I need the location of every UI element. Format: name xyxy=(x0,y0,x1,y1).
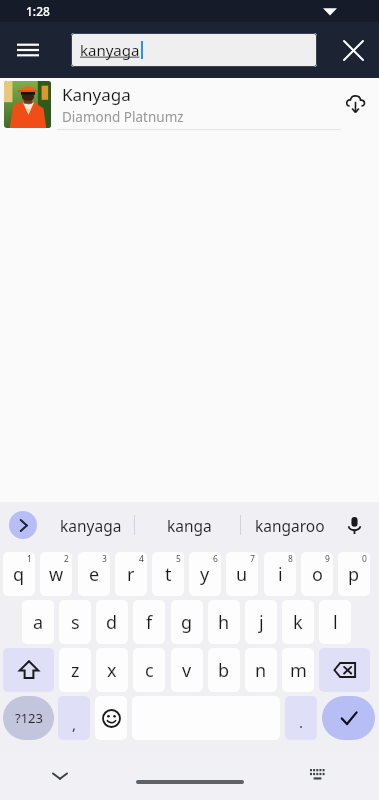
button[interactable]: Emoji xyxy=(95,696,127,740)
button[interactable]: kanga xyxy=(148,505,230,545)
button[interactable]: kanyaga xyxy=(71,33,317,67)
button[interactable]: Hide keyboard xyxy=(44,760,76,792)
button[interactable]: l xyxy=(319,600,351,644)
button[interactable]: j xyxy=(245,600,277,644)
staticText: h xyxy=(218,610,230,635)
button[interactable]: z xyxy=(59,648,91,692)
button[interactable]: kanyaga xyxy=(50,505,132,545)
staticText: t xyxy=(165,562,172,587)
staticText: , xyxy=(72,714,77,734)
staticText: j xyxy=(259,610,264,635)
staticText: e xyxy=(89,562,100,587)
button[interactable]: g xyxy=(171,600,203,644)
staticText: 1:28 xyxy=(26,3,50,19)
staticText: . xyxy=(299,712,304,732)
button[interactable]: a xyxy=(22,600,54,644)
staticText: 0 xyxy=(362,553,367,565)
staticText: u xyxy=(236,562,248,587)
staticText: 7 xyxy=(250,553,255,565)
button[interactable]: n xyxy=(245,648,277,692)
staticText: z xyxy=(71,658,80,683)
button[interactable]: c xyxy=(133,648,165,692)
button[interactable]: Enter xyxy=(322,696,375,740)
button[interactable]: s xyxy=(59,600,91,644)
button[interactable]: ?123 xyxy=(3,696,54,740)
staticText: 4 xyxy=(139,553,144,565)
staticText: 1 xyxy=(27,553,32,565)
button[interactable]: . xyxy=(285,696,317,740)
staticText: Kanyaga xyxy=(62,83,131,106)
button[interactable]: y xyxy=(189,552,221,596)
staticText: l xyxy=(333,610,338,635)
staticText: r xyxy=(127,562,135,587)
button[interactable]: Shift xyxy=(3,648,54,692)
staticText: c xyxy=(145,658,154,683)
staticText: kanyaga xyxy=(80,40,140,60)
staticText: 3 xyxy=(102,553,107,565)
staticText: v xyxy=(182,658,192,683)
button[interactable]: kangaroo xyxy=(248,505,332,545)
button[interactable]: Voice input xyxy=(337,508,371,542)
staticText: kangaroo xyxy=(255,515,325,536)
button[interactable]: o xyxy=(301,552,333,596)
staticText: 2 xyxy=(64,553,69,565)
staticText: g xyxy=(181,610,193,635)
button[interactable]: f xyxy=(133,600,165,644)
button[interactable]: x xyxy=(96,648,128,692)
staticText: w xyxy=(49,562,64,587)
button[interactable]: b xyxy=(208,648,240,692)
staticText: 5 xyxy=(176,553,181,565)
staticText: a xyxy=(33,610,44,635)
staticText: n xyxy=(255,658,267,683)
button[interactable]: More suggestions xyxy=(9,511,37,539)
button[interactable]: w xyxy=(40,552,72,596)
staticText: f xyxy=(146,610,153,635)
staticText: k xyxy=(293,610,303,635)
staticText: p xyxy=(348,562,360,587)
button[interactable]: v xyxy=(171,648,203,692)
staticText: ?123 xyxy=(15,709,43,727)
button[interactable]: q xyxy=(3,552,35,596)
staticText: m xyxy=(290,658,307,683)
staticText: kanga xyxy=(167,515,212,536)
button[interactable]: Switch keyboard xyxy=(301,760,333,792)
staticText: i xyxy=(278,562,283,587)
button[interactable]: d xyxy=(96,600,128,644)
button[interactable]: r xyxy=(115,552,147,596)
staticText: q xyxy=(13,562,25,587)
button[interactable]: u xyxy=(226,552,258,596)
staticText: d xyxy=(106,610,118,635)
button[interactable]: Download xyxy=(331,78,379,128)
staticText: 8 xyxy=(288,553,293,565)
button[interactable]: e xyxy=(78,552,110,596)
staticText: s xyxy=(71,610,80,635)
button[interactable]: , xyxy=(58,696,90,740)
button[interactable]: Close search xyxy=(327,22,379,78)
staticText: 9 xyxy=(325,553,330,565)
staticText: o xyxy=(312,562,323,587)
button[interactable]: Menu xyxy=(0,22,56,78)
staticText: y xyxy=(200,562,210,587)
button[interactable]: h xyxy=(208,600,240,644)
staticText: 6 xyxy=(213,553,218,565)
button[interactable]: Backspace xyxy=(319,648,370,692)
button[interactable]: k xyxy=(282,600,314,644)
button[interactable]: t xyxy=(152,552,184,596)
staticText: x xyxy=(107,658,117,683)
staticText: b xyxy=(218,658,230,683)
staticText: Diamond Platnumz xyxy=(62,108,184,126)
button[interactable]: Kanyaga xyxy=(0,78,379,133)
staticText: kanyaga xyxy=(60,515,122,536)
button[interactable]: p xyxy=(338,552,370,596)
button[interactable]: m xyxy=(282,648,314,692)
button[interactable]: i xyxy=(264,552,296,596)
